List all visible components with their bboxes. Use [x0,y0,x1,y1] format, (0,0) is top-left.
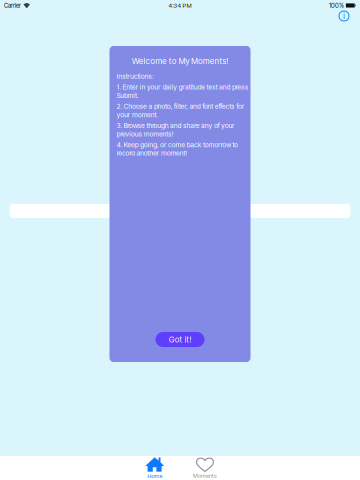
button[interactable]: Home [130,457,180,479]
staticText: Submit. [116,91,139,100]
staticText: your moment. [116,111,158,119]
staticText: 3. Browse through and share any of your [116,121,235,130]
staticText: record another moment! [116,149,187,157]
staticText: Carrier [4,2,21,9]
staticText: Instructions: [116,72,154,80]
staticText: previous moments! [116,130,174,138]
staticText: Welcome to My Moments! [132,56,228,66]
button[interactable]: Info [339,11,349,21]
staticText: Home [147,473,162,479]
button[interactable]: Got it! [155,332,204,347]
staticText: 2. Choose a photo, filter, and font effe… [116,102,245,110]
staticText: 4:34 PM [168,2,191,9]
button[interactable]: Moments [180,457,230,479]
staticText: 4. Keep going, or come back tomorrow to [116,141,238,149]
staticText: Moments [193,472,217,479]
staticText: i [343,11,345,21]
staticText: 1. Enter in your daily gratitude text an… [116,83,249,91]
staticText: 100% [329,2,344,9]
staticText: Got it! [169,335,191,344]
